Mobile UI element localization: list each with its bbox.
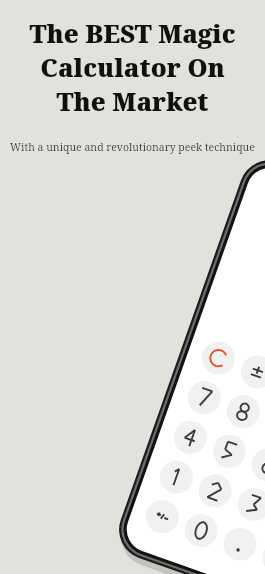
staticText: Calculator On [0,50,265,84]
button[interactable]: Magic calculator phone preview [0,0,265,574]
staticText: The BEST Magic [0,16,265,50]
staticText: With a unique and revolutionary peek tec… [0,140,265,154]
staticText: The Market [0,84,265,118]
